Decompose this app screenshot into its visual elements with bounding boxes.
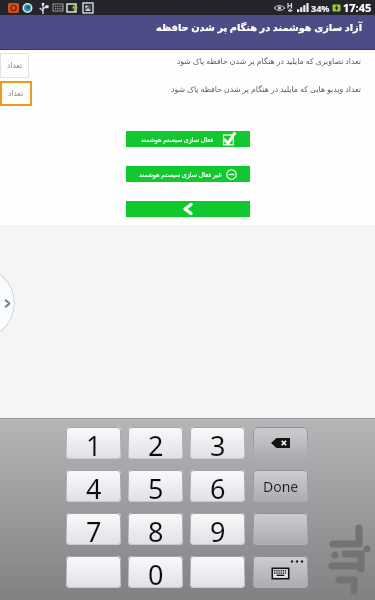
button[interactable]: 6	[190, 470, 245, 502]
button[interactable]	[190, 556, 245, 588]
staticText: 4	[86, 470, 102, 502]
button[interactable]: 1	[66, 427, 121, 459]
button[interactable]: 4	[66, 470, 121, 502]
button[interactable]	[126, 201, 250, 217]
staticText: تعداد	[8, 89, 24, 98]
staticText: تعداد تصاویری که مایلید در هنگام پر شدن …	[0, 56, 361, 67]
button[interactable]: تعداد	[0, 53, 29, 78]
button[interactable]: 8	[128, 513, 183, 545]
staticText: 5	[148, 470, 164, 502]
button[interactable]: Open panel	[0, 266, 15, 340]
staticText: 0	[148, 556, 164, 588]
staticText: 3	[210, 427, 226, 459]
staticText: Done	[263, 477, 299, 496]
staticText: تعداد	[7, 61, 23, 70]
button[interactable]: تعداد	[0, 81, 32, 106]
button[interactable]: 3	[190, 427, 245, 459]
button[interactable]	[253, 513, 308, 545]
staticText: 9	[210, 513, 226, 545]
staticText: 8	[148, 513, 164, 545]
staticText: 6	[210, 470, 226, 502]
button[interactable]: فعال سازی سیستم هوشمند	[126, 131, 250, 147]
staticText: 7	[86, 513, 102, 545]
button[interactable]: 0	[128, 556, 183, 588]
button[interactable]: 5	[128, 470, 183, 502]
button[interactable]: غیر فعال سازی سیستم هوشمند	[126, 166, 250, 182]
staticText: 17:45	[343, 0, 372, 15]
button[interactable]	[66, 556, 121, 588]
button[interactable]: 7	[66, 513, 121, 545]
button[interactable]: Done	[253, 470, 308, 502]
staticText: آزاد سازی هوشمند در هنگام پر شدن حافظه	[156, 21, 363, 34]
staticText: تعداد ویدیو هایی که مایلید در هنگام پر ش…	[0, 84, 361, 95]
staticText: 1	[86, 427, 102, 459]
staticText: 34%	[311, 2, 330, 14]
staticText: 2	[148, 427, 164, 459]
staticText: غیر فعال سازی سیستم هوشمند	[139, 170, 222, 179]
button[interactable]: 9	[190, 513, 245, 545]
button[interactable]: Backspace	[253, 427, 308, 459]
button[interactable]: Switch keyboard	[253, 556, 308, 588]
button[interactable]: 2	[128, 427, 183, 459]
staticText: فعال سازی سیستم هوشمند	[141, 135, 214, 144]
